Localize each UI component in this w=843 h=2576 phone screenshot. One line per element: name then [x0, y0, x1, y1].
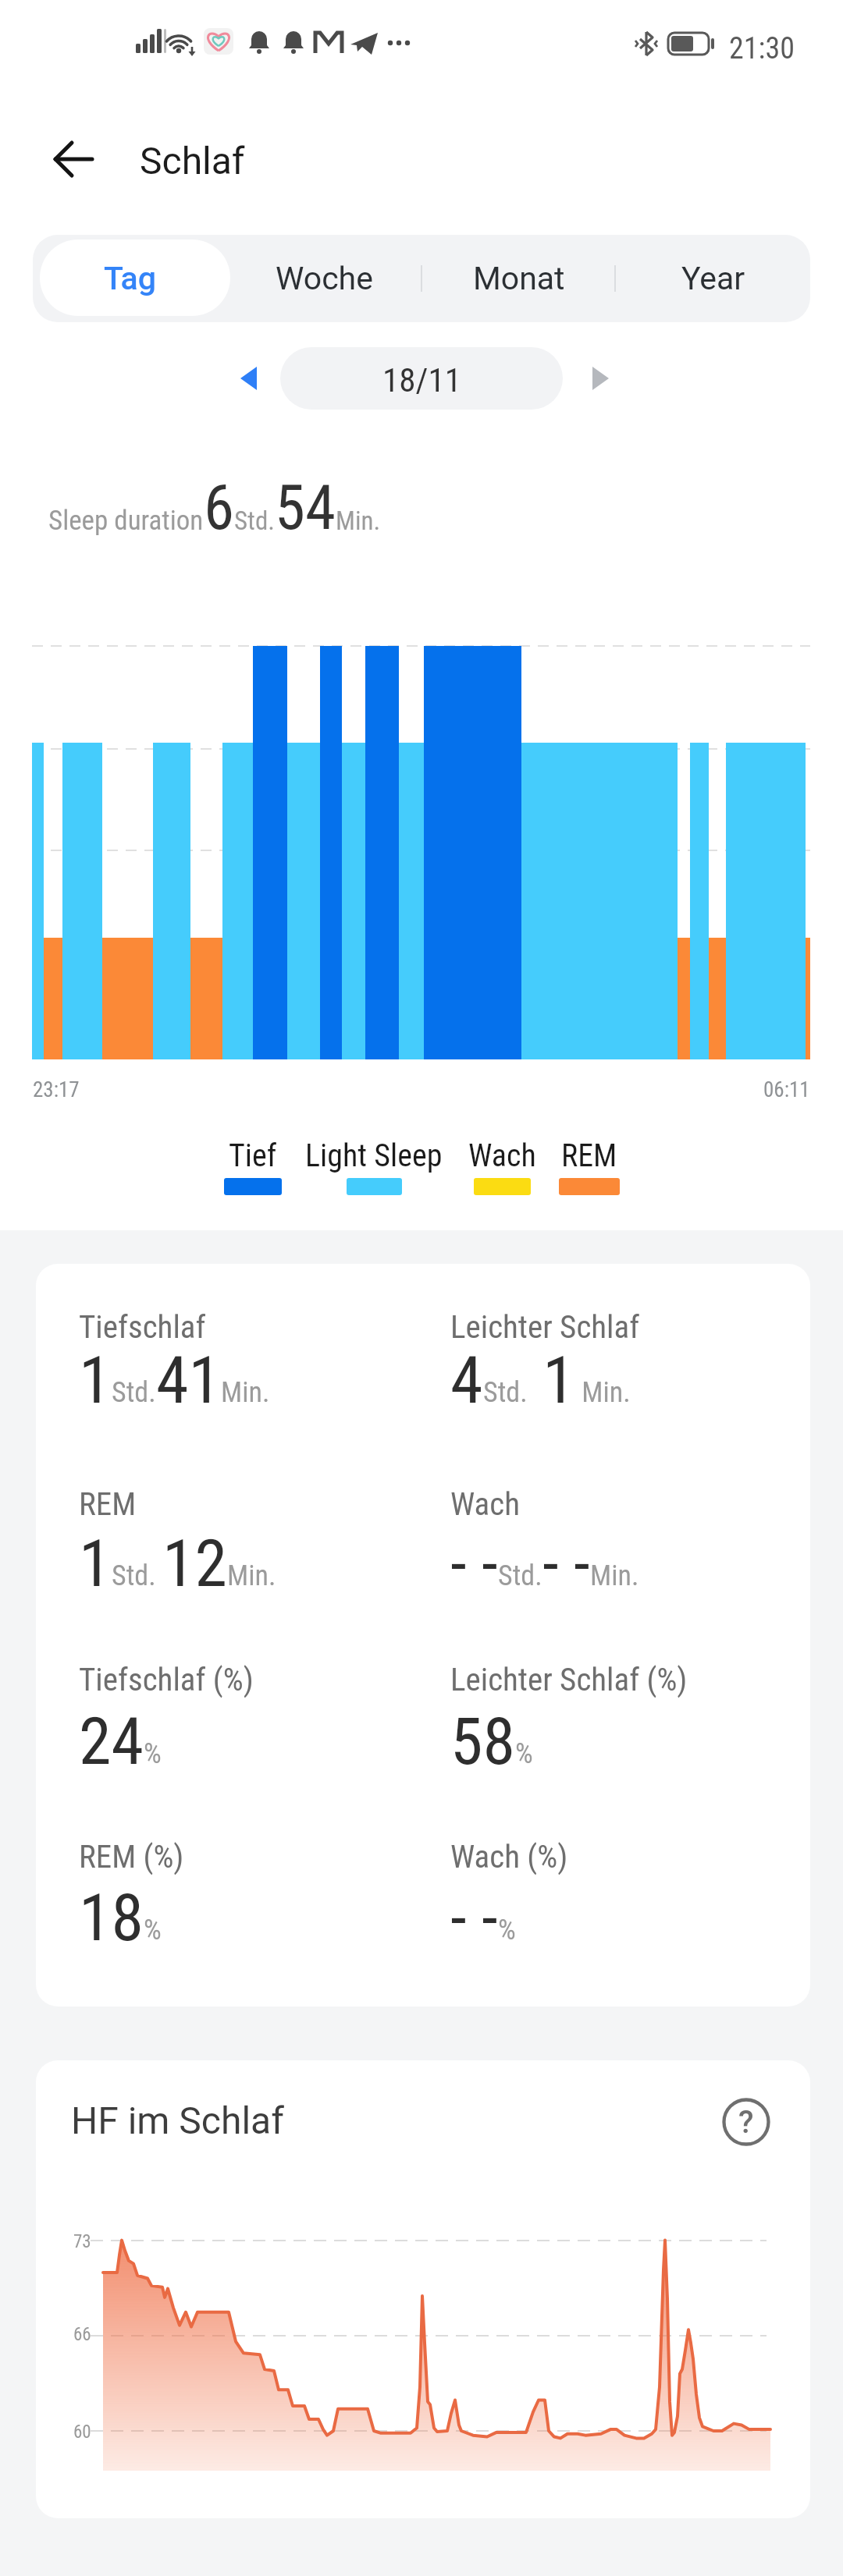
- staticText: HF im Schlaf: [71, 2099, 284, 2142]
- staticText: Tief: [229, 1137, 277, 1174]
- staticText: - -: [450, 1525, 498, 1602]
- staticText: 18/11: [382, 360, 461, 399]
- staticText: Schlaf: [140, 139, 245, 183]
- staticText: REM: [79, 1485, 137, 1523]
- staticText: Std.: [498, 1559, 542, 1592]
- button[interactable]: Year: [616, 235, 810, 322]
- staticText: Monat: [473, 260, 565, 297]
- button[interactable]: ?: [717, 2092, 776, 2152]
- staticText: Wach (%): [450, 1838, 568, 1875]
- staticText: Min.: [227, 1559, 276, 1592]
- staticText: 58: [450, 1703, 515, 1779]
- staticText: 06:11: [763, 1077, 810, 1102]
- staticText: Min.: [336, 506, 381, 536]
- staticText: 6: [204, 472, 234, 545]
- staticText: - -: [542, 1525, 590, 1602]
- button[interactable]: [44, 130, 103, 189]
- staticText: 4: [450, 1342, 483, 1418]
- staticText: Woche: [276, 260, 373, 297]
- button[interactable]: Tag: [33, 235, 227, 322]
- staticText: 21:30: [729, 31, 795, 66]
- staticText: %: [515, 1737, 533, 1770]
- button[interactable]: [225, 355, 273, 402]
- staticText: Min.: [221, 1376, 270, 1409]
- staticText: Wach: [450, 1485, 520, 1523]
- staticText: Std.: [483, 1376, 528, 1409]
- staticText: REM (%): [79, 1838, 184, 1875]
- staticText: Min.: [590, 1559, 639, 1592]
- staticText: %: [498, 1914, 516, 1946]
- staticText: Year: [681, 260, 745, 297]
- staticText: Wach: [468, 1137, 536, 1174]
- staticText: 1: [528, 1342, 575, 1418]
- staticText: 24: [79, 1703, 144, 1779]
- staticText: Std.: [234, 506, 275, 536]
- staticText: ?: [738, 2104, 754, 2141]
- staticText: - -: [450, 1879, 498, 1956]
- staticText: Tag: [104, 260, 156, 297]
- staticText: 1: [79, 1525, 112, 1602]
- staticText: Std.: [112, 1376, 156, 1409]
- staticText: %: [144, 1737, 162, 1770]
- staticText: %: [144, 1914, 162, 1946]
- staticText: 54: [275, 472, 336, 545]
- button[interactable]: 18/11: [280, 347, 563, 410]
- staticText: 41: [156, 1342, 221, 1418]
- staticText: 12: [162, 1525, 227, 1602]
- staticText: Leichter Schlaf: [450, 1308, 640, 1346]
- staticText: Tiefschlaf: [79, 1308, 206, 1346]
- staticText: Tiefschlaf (%): [79, 1661, 254, 1698]
- staticText: 18: [79, 1879, 144, 1956]
- button[interactable]: Monat: [421, 235, 616, 322]
- button[interactable]: Woche: [227, 235, 421, 322]
- staticText: 23:17: [33, 1077, 80, 1102]
- staticText: Min.: [575, 1376, 631, 1409]
- staticText: REM: [561, 1137, 617, 1174]
- staticText: 73: [73, 2231, 91, 2252]
- staticText: Leichter Schlaf (%): [450, 1661, 688, 1698]
- staticText: 60: [73, 2422, 91, 2443]
- staticText: 1: [79, 1342, 112, 1418]
- staticText: Std.: [112, 1559, 162, 1592]
- staticText: Light Sleep: [305, 1137, 443, 1174]
- button[interactable]: [570, 355, 618, 402]
- staticText: 66: [73, 2324, 91, 2345]
- staticText: Sleep duration: [48, 505, 204, 537]
